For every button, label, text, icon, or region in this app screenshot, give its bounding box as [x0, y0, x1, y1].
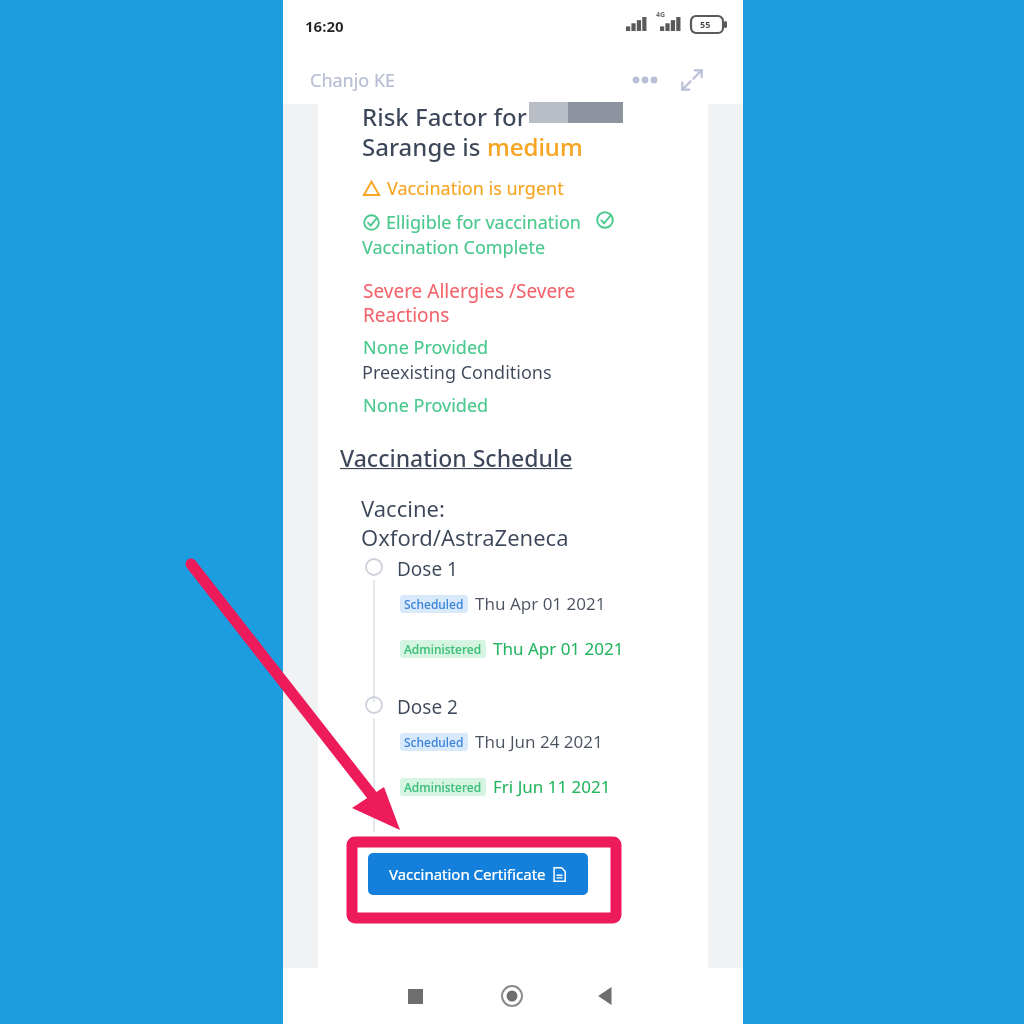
staticText: Chanjo KE	[310, 68, 396, 93]
staticText: Severe Allergies /Severe	[363, 278, 576, 304]
staticText: Oxford/AstraZeneca	[361, 522, 569, 552]
button[interactable]: Collapse	[672, 60, 712, 100]
button[interactable]: Vaccination Certificate	[368, 853, 588, 895]
staticText: Administered	[404, 779, 482, 795]
staticText: Vaccination Certificate	[389, 864, 546, 884]
staticText: 55	[700, 18, 711, 30]
staticText: Sarange is	[362, 130, 487, 163]
staticText: Fri Jun 11 2021	[493, 775, 611, 798]
staticText: 4G	[656, 10, 666, 20]
staticText: Thu Apr 01 2021	[493, 637, 624, 660]
staticText: None Provided	[363, 335, 489, 360]
staticText: Scheduled	[404, 734, 464, 750]
staticText: Scheduled	[404, 596, 464, 612]
staticText: Risk Factor for	[362, 100, 527, 133]
staticText: medium	[487, 130, 583, 163]
staticText: 16:20	[305, 16, 344, 36]
staticText: Vaccination Complete	[362, 235, 546, 260]
staticText: Vaccination is urgent	[387, 176, 564, 201]
staticText: Administered	[404, 641, 482, 657]
button[interactable]: Back	[585, 976, 625, 1016]
button[interactable]: More options	[625, 62, 665, 98]
staticText: Dose 2	[397, 694, 458, 720]
button[interactable]: Home	[492, 976, 532, 1016]
staticText: Reactions	[363, 302, 450, 328]
staticText: Dose 1	[397, 556, 458, 582]
staticText: Vaccine:	[361, 493, 445, 523]
staticText: Thu Apr 01 2021	[475, 592, 606, 615]
staticText: Preexisting Conditions	[362, 360, 552, 385]
staticText: Vaccination Schedule	[340, 442, 573, 473]
staticText: Elligible for vaccination	[386, 210, 581, 235]
button[interactable]: Recent apps	[395, 976, 435, 1016]
staticText: Thu Jun 24 2021	[475, 730, 603, 753]
staticText: None Provided	[363, 393, 489, 418]
